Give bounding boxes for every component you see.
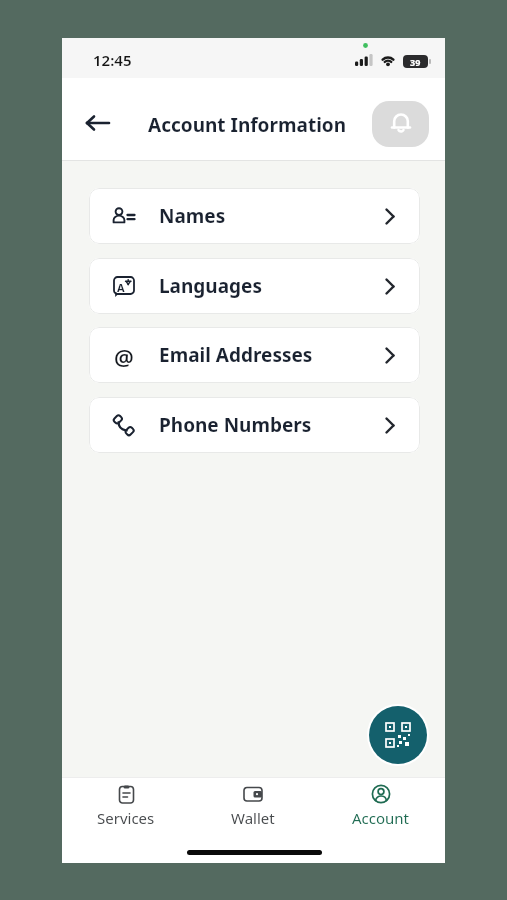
staticText: @ xyxy=(114,342,134,368)
staticText: Phone Numbers xyxy=(159,412,312,438)
staticText: Names xyxy=(159,203,226,229)
button[interactable]: Wallet xyxy=(189,784,317,828)
staticText: 12:45 xyxy=(93,50,132,70)
button[interactable]: @ xyxy=(89,327,420,383)
staticText: Wallet xyxy=(231,808,275,828)
button[interactable] xyxy=(372,101,429,147)
staticText: Services xyxy=(97,808,155,828)
button[interactable]: A xyxy=(89,258,420,314)
button[interactable]: Services xyxy=(62,784,189,828)
staticText: 39 xyxy=(410,56,421,68)
button[interactable]: Account xyxy=(317,784,445,828)
staticText: A xyxy=(117,280,125,295)
staticText: Email Addresses xyxy=(159,342,313,368)
staticText: Account Information xyxy=(148,112,347,138)
button[interactable]: Names xyxy=(89,188,420,244)
button[interactable]: Phone Numbers xyxy=(89,397,420,453)
staticText: Account xyxy=(352,808,410,828)
button[interactable] xyxy=(369,706,427,764)
staticText: Languages xyxy=(159,273,262,299)
button[interactable] xyxy=(80,105,116,141)
